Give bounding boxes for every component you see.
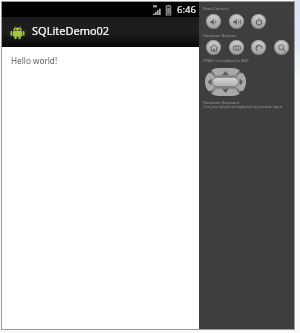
staticText: Hello world! xyxy=(11,55,58,66)
button[interactable]: Back xyxy=(251,40,266,55)
button[interactable]: Volume down xyxy=(206,14,221,29)
staticText: Hardware Keyboard xyxy=(203,100,239,105)
staticText: DPAD not enabled in AVD xyxy=(203,58,249,63)
button[interactable]: Home xyxy=(206,40,221,55)
button[interactable]: Menu xyxy=(229,40,244,55)
staticText: SQLiteDemo02 xyxy=(32,23,110,38)
staticText: Use your physical keyboard to provide in… xyxy=(203,104,283,109)
staticText: 6:46 xyxy=(177,3,196,16)
button[interactable]: Volume up xyxy=(229,14,244,29)
staticText: Basic Controls xyxy=(203,6,229,11)
staticText: Hardware Buttons xyxy=(203,33,236,38)
button[interactable]: Power xyxy=(251,14,266,29)
button[interactable]: Search xyxy=(274,40,289,55)
button[interactable]: D-pad xyxy=(205,68,246,96)
